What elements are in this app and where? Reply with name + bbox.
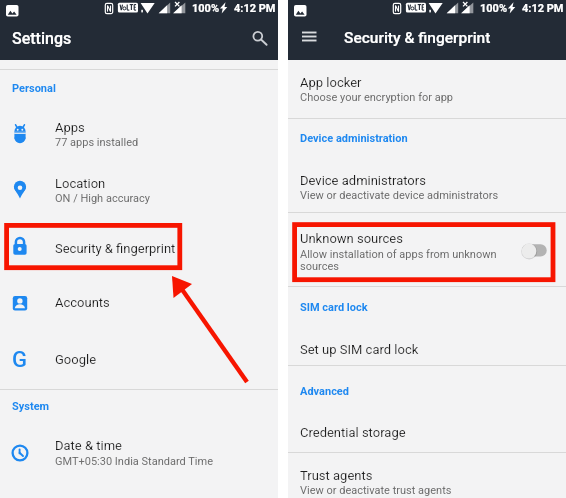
staticText: Device administrators: [300, 173, 426, 188]
button[interactable]: Search: [244, 27, 272, 55]
staticText: 4:12 PM: [522, 2, 564, 15]
staticText: Device administration: [300, 132, 408, 145]
staticText: Unknown sources: [300, 231, 403, 246]
staticText: Personal: [12, 82, 56, 95]
staticText: ON / High accuracy: [55, 192, 150, 205]
staticText: Accounts: [55, 295, 110, 310]
button[interactable]: [288, 62, 566, 118]
button[interactable]: [288, 455, 566, 498]
button[interactable]: [0, 332, 278, 389]
staticText: 100%: [192, 2, 220, 15]
button[interactable]: [0, 419, 278, 480]
staticText: Date & time: [55, 438, 122, 453]
staticText: Set up SIM card lock: [300, 342, 419, 357]
button[interactable]: Menu: [288, 22, 566, 60]
button[interactable]: [288, 213, 566, 286]
staticText: Advanced: [300, 385, 349, 398]
staticText: Apps: [55, 120, 85, 135]
staticText: View or deactivate trust agents: [300, 484, 452, 497]
staticText: sources: [300, 260, 339, 273]
staticText: Settings: [12, 29, 72, 48]
staticText: Security & fingerprint: [55, 241, 176, 256]
staticText: GMT+05:30 India Standard Time: [55, 455, 213, 468]
staticText: Google: [55, 352, 97, 367]
staticText: G: [12, 347, 27, 373]
button[interactable]: Unknown sources toggle: [515, 237, 553, 265]
staticText: Allow installation of apps from unknown: [300, 248, 497, 261]
staticText: Location: [55, 176, 106, 191]
button[interactable]: [0, 160, 278, 218]
button[interactable]: Search: [0, 22, 278, 60]
staticText: Security & fingerprint: [344, 29, 491, 47]
staticText: Credential storage: [300, 425, 406, 440]
button[interactable]: [288, 330, 566, 365]
staticText: 77 apps installed: [55, 136, 139, 149]
button[interactable]: [0, 105, 278, 160]
staticText: View or deactivate device administrators: [300, 189, 499, 202]
button[interactable]: [288, 414, 566, 452]
staticText: 4:12 PM: [234, 2, 276, 15]
staticText: Trust agents: [300, 468, 373, 483]
staticText: App locker: [300, 75, 362, 90]
button[interactable]: [0, 223, 278, 269]
staticText: System: [12, 400, 50, 413]
button[interactable]: Menu: [297, 29, 321, 53]
staticText: 100%: [480, 2, 508, 15]
button[interactable]: [288, 158, 566, 212]
button[interactable]: [0, 276, 278, 332]
staticText: SIM card lock: [300, 301, 368, 314]
staticText: Choose your encryption for app: [300, 91, 454, 104]
